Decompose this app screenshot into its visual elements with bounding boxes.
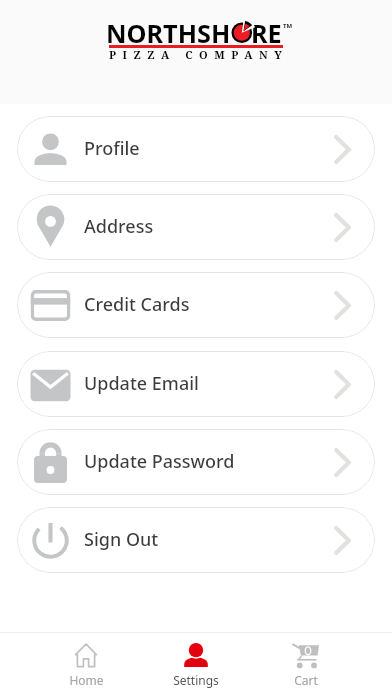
staticText: Sign Out xyxy=(84,527,159,552)
staticText: RE xyxy=(251,16,283,50)
button[interactable]: Home xyxy=(31,633,141,696)
staticText: PIZZA COMPANY xyxy=(109,47,289,62)
button[interactable]: Settings xyxy=(141,633,251,696)
staticText: NORTHSH xyxy=(106,16,231,50)
button[interactable]: Profile xyxy=(17,116,375,182)
staticText: Address xyxy=(84,214,154,239)
button[interactable]: Update Password xyxy=(17,429,375,495)
staticText: Cart xyxy=(294,672,318,688)
button[interactable]: Credit Cards xyxy=(17,272,375,338)
staticText: Profile xyxy=(84,136,140,161)
button[interactable]: Sign Out xyxy=(17,507,375,573)
staticText: Credit Cards xyxy=(84,292,190,317)
staticText: TM xyxy=(283,22,293,30)
staticText: Update Password xyxy=(84,449,235,474)
button[interactable]: Update Email xyxy=(17,351,375,417)
button[interactable]: Cart xyxy=(251,633,361,696)
staticText: Settings xyxy=(173,672,219,688)
staticText: Update Email xyxy=(84,371,199,396)
staticText: Home xyxy=(69,672,104,688)
button[interactable]: Address xyxy=(17,194,375,260)
